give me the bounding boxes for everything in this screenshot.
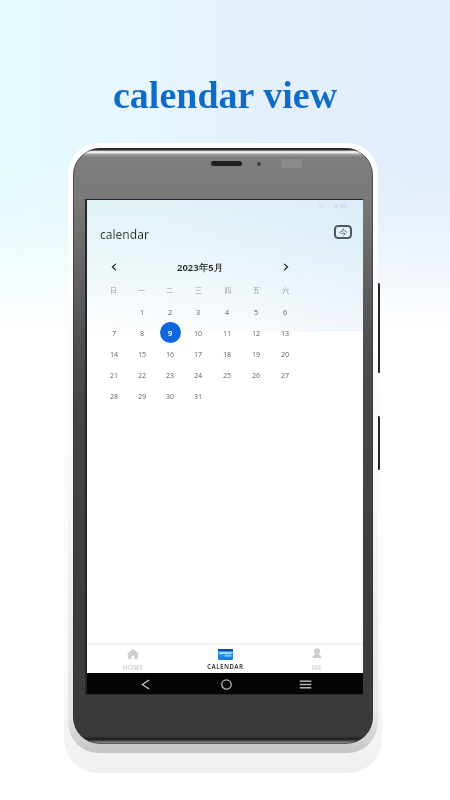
staticText: ME — [312, 663, 322, 671]
staticText: 27 — [281, 370, 290, 380]
staticText: 6 — [283, 307, 288, 317]
staticText: 五 — [253, 286, 261, 295]
button[interactable]: Back — [135, 674, 155, 694]
staticText: calendar view — [113, 74, 338, 116]
button[interactable]: 7 — [104, 322, 125, 343]
button[interactable]: 26 — [246, 364, 267, 385]
staticText: 9 — [168, 328, 173, 338]
staticText: 28 — [110, 391, 119, 401]
button[interactable]: 2 — [160, 301, 181, 322]
staticText: calendar — [100, 226, 149, 242]
staticText: 19 — [252, 349, 261, 359]
staticText: 25 — [223, 370, 232, 380]
staticText: 六 — [282, 286, 290, 295]
staticText: 23 — [166, 370, 175, 380]
staticText: 22 — [138, 370, 147, 380]
button[interactable]: Recent apps — [295, 674, 315, 694]
staticText: 29 — [138, 391, 147, 401]
staticText: 13 — [281, 328, 290, 338]
staticText: 今 — [339, 227, 348, 238]
button[interactable]: 24 — [188, 364, 209, 385]
button[interactable]: 22 — [132, 364, 153, 385]
button[interactable]: 31 — [188, 385, 209, 406]
button[interactable]: 28 — [104, 385, 125, 406]
staticText: 5 — [254, 307, 259, 317]
staticText: 20 — [281, 349, 290, 359]
staticText: CALENDAR — [207, 662, 244, 670]
button[interactable]: 15 — [132, 343, 153, 364]
button[interactable]: 9 — [160, 322, 181, 343]
button[interactable]: Home — [216, 674, 236, 694]
button[interactable]: 8 — [132, 322, 153, 343]
button[interactable]: 18 — [217, 343, 238, 364]
staticText: 二 — [166, 286, 174, 295]
staticText: HOME — [123, 663, 144, 671]
staticText: 12 — [252, 328, 261, 338]
button[interactable]: 21 — [104, 364, 125, 385]
staticText: 26 — [252, 370, 261, 380]
button[interactable]: 20 — [275, 343, 296, 364]
staticText: 16 — [166, 349, 175, 359]
button[interactable]: Next month — [277, 258, 295, 276]
button[interactable]: Previous month — [105, 258, 123, 276]
button[interactable]: 19 — [246, 343, 267, 364]
staticText: 2023年5月 — [177, 261, 224, 274]
button[interactable]: calendar — [100, 224, 149, 243]
button[interactable]: Today — [334, 225, 352, 239]
button[interactable]: 12 — [246, 322, 267, 343]
button[interactable]: 23 — [160, 364, 181, 385]
staticText: 31 — [194, 391, 203, 401]
button[interactable]: 6 — [275, 301, 296, 322]
staticText: 18 — [223, 349, 232, 359]
button[interactable]: 10 — [188, 322, 209, 343]
button[interactable]: ME — [271, 645, 363, 673]
button[interactable]: CALENDAR — [179, 645, 271, 673]
staticText: 17 — [194, 349, 203, 359]
staticText: 8 — [140, 328, 145, 338]
staticText: 15 — [138, 349, 147, 359]
staticText: 2 — [168, 307, 173, 317]
staticText: 一 — [138, 286, 146, 295]
button[interactable]: 17 — [188, 343, 209, 364]
staticText: 4 — [225, 307, 230, 317]
button[interactable]: 30 — [160, 385, 181, 406]
button[interactable]: HOME — [87, 645, 179, 673]
staticText: 30 — [166, 391, 175, 401]
staticText: 14 — [110, 349, 119, 359]
button[interactable]: 13 — [275, 322, 296, 343]
staticText: 21 — [110, 370, 119, 380]
button[interactable]: 27 — [275, 364, 296, 385]
button[interactable]: 16 — [160, 343, 181, 364]
staticText: 三 — [195, 286, 203, 295]
button[interactable]: 29 — [132, 385, 153, 406]
staticText: 3 — [196, 307, 201, 317]
staticText: 日 — [110, 286, 118, 295]
staticText: 1 — [140, 307, 145, 317]
button[interactable]: 25 — [217, 364, 238, 385]
staticText: 10 — [194, 328, 203, 338]
button[interactable]: 4 — [217, 301, 238, 322]
button[interactable]: 1 — [132, 301, 153, 322]
staticText: 7 — [112, 328, 117, 338]
button[interactable]: 5 — [246, 301, 267, 322]
button[interactable]: 14 — [104, 343, 125, 364]
button[interactable]: 11 — [217, 322, 238, 343]
button[interactable]: 3 — [188, 301, 209, 322]
staticText: 四 — [224, 286, 232, 295]
staticText: 11 — [223, 328, 232, 338]
staticText: 24 — [194, 370, 203, 380]
